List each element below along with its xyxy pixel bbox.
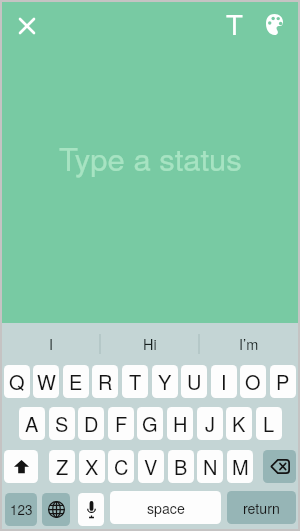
button[interactable]: Y [152,365,178,398]
button[interactable]: C [108,450,134,483]
staticText: D [84,409,99,438]
staticText: E [69,367,83,396]
button[interactable]: X [79,450,105,483]
staticText: A [25,409,39,438]
staticText: Z [56,452,69,481]
staticText: Type a status [59,135,242,179]
button[interactable]: Change keyboard [42,493,70,526]
staticText: I [49,333,54,354]
button[interactable]: Q [4,365,30,398]
button[interactable]: D [78,407,104,440]
button[interactable]: O [240,365,266,398]
button[interactable]: H [167,407,193,440]
staticText: I [221,367,227,396]
button[interactable]: space [110,491,221,524]
staticText: Y [158,367,172,396]
button[interactable]: Close [11,10,43,42]
button[interactable]: Z [49,450,75,483]
button[interactable]: J [197,407,223,440]
button[interactable]: Shift [4,450,38,483]
staticText: 123 [10,500,33,519]
staticText: U [187,367,202,396]
staticText: X [85,452,99,481]
staticText: P [276,367,290,396]
button[interactable]: B [168,450,194,483]
button[interactable]: I [2,323,100,363]
button[interactable]: R [92,365,118,398]
button[interactable]: W [33,365,59,398]
staticText: space [147,498,185,518]
staticText: M [232,452,249,481]
button[interactable]: I [211,365,237,398]
button[interactable]: V [138,450,164,483]
staticText: H [173,409,188,438]
staticText: T [226,3,243,35]
staticText: J [205,409,215,438]
button[interactable]: N [197,450,223,483]
button[interactable]: L [256,407,282,440]
button[interactable]: M [227,450,253,483]
staticText: G [142,409,158,438]
staticText: Q [9,367,25,396]
staticText: O [245,367,261,396]
button[interactable]: E [63,365,89,398]
button[interactable]: A [19,407,45,440]
staticText: return [243,498,280,518]
staticText: I’m [239,333,259,354]
staticText: N [203,452,218,481]
button[interactable]: 123 [5,493,37,526]
button[interactable]: Backspace [263,450,296,483]
button[interactable]: U [181,365,207,398]
button[interactable]: K [226,407,252,440]
button[interactable]: T [122,365,148,398]
staticText: K [232,409,246,438]
button[interactable]: I’m [199,323,298,363]
button[interactable]: Dictation [78,493,104,526]
staticText: V [144,452,158,481]
staticText: L [263,409,275,438]
button[interactable]: Color palette [258,8,290,40]
button[interactable]: Hi [100,323,199,363]
button[interactable]: P [270,365,296,398]
button[interactable]: return [227,491,296,524]
staticText: W [37,367,56,396]
button[interactable]: G [137,407,163,440]
button[interactable]: S [49,407,75,440]
button[interactable]: F [108,407,134,440]
staticText: Hi [143,333,157,354]
staticText: B [174,452,188,481]
staticText: S [55,409,69,438]
staticText: F [115,409,128,438]
button[interactable]: Text style [218,3,250,35]
staticText: C [114,452,129,481]
staticText: T [129,367,142,396]
staticText: R [98,367,113,396]
